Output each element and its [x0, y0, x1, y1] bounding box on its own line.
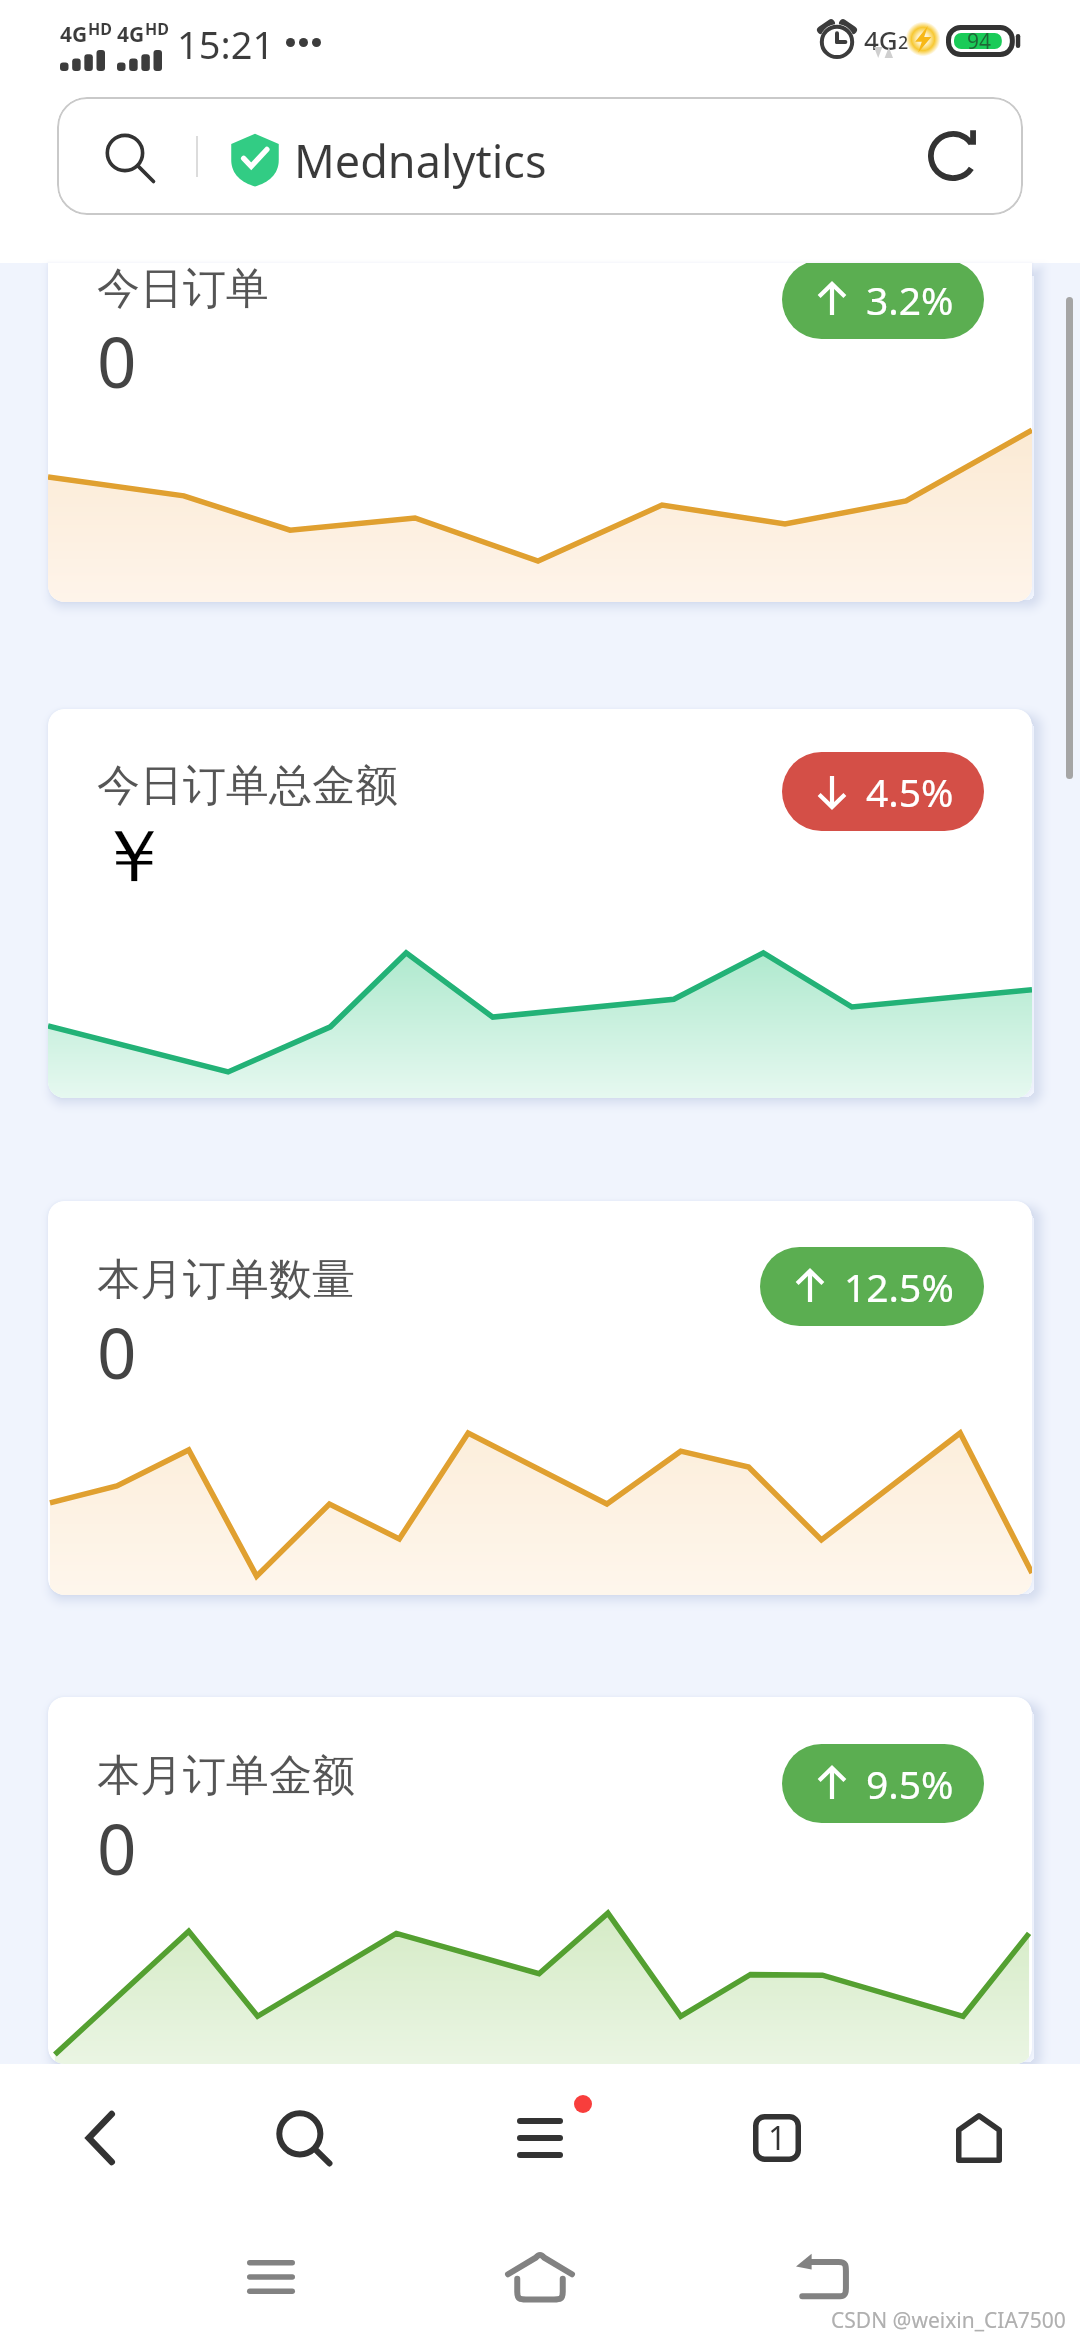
staticText: 1	[768, 2116, 787, 2160]
button[interactable]: Recent apps	[201, 2217, 341, 2337]
staticText: 15:21	[177, 18, 275, 70]
button[interactable]: Search	[234, 2078, 374, 2198]
staticText: HD	[88, 18, 112, 40]
staticText: ￥	[97, 811, 170, 903]
staticText: 今日订单总金额	[97, 759, 398, 813]
button[interactable]: Search	[57, 97, 1023, 215]
button[interactable]: 3.2%	[782, 263, 984, 339]
staticText: CSDN @weixin_CIA7500	[831, 2306, 1066, 2335]
button[interactable]: 12.5%	[760, 1247, 984, 1326]
button[interactable]: Home	[909, 2078, 1049, 2198]
button[interactable]: 4.5%	[782, 752, 984, 831]
staticText: 本月订单数量	[97, 1253, 355, 1307]
button[interactable]: 本月订单金额	[48, 1697, 1032, 2064]
staticText: 4G	[117, 20, 145, 49]
staticText: 4G	[864, 22, 898, 57]
button[interactable]: Back	[30, 2078, 170, 2198]
staticText: 12.5%	[844, 1260, 954, 1313]
staticText: 0	[97, 1305, 137, 1399]
button[interactable]: Tabs	[707, 2078, 847, 2198]
button[interactable]: Menu	[470, 2078, 610, 2198]
button[interactable]: Back	[752, 2217, 892, 2337]
staticText: Mednalytics	[294, 130, 547, 191]
staticText: 0	[97, 314, 137, 408]
button[interactable]: 今日订单	[48, 263, 1032, 602]
staticText: 今日订单	[97, 263, 269, 316]
button[interactable]: Home	[470, 2217, 610, 2337]
staticText: 2	[898, 30, 909, 55]
staticText: 本月订单金额	[97, 1749, 355, 1803]
button[interactable]: 今日订单总金额	[48, 709, 1032, 1098]
other: Search	[102, 130, 158, 186]
staticText: 3.2%	[866, 273, 954, 326]
staticText: HD	[145, 18, 169, 40]
button[interactable]: Refresh	[907, 110, 999, 202]
staticText: 4.5%	[866, 765, 954, 818]
button[interactable]: 本月订单数量	[48, 1201, 1032, 1595]
button[interactable]: 9.5%	[782, 1744, 984, 1823]
staticText: 0	[97, 1801, 137, 1895]
staticText: 4G	[60, 20, 88, 49]
staticText: 9.5%	[866, 1757, 954, 1810]
staticText: 94	[967, 27, 992, 56]
